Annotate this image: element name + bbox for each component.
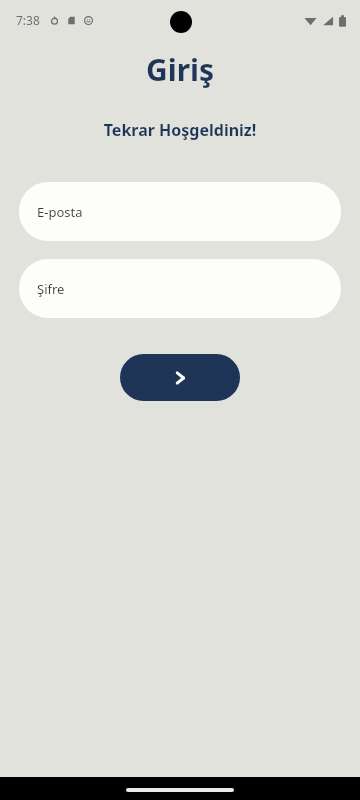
staticText: E-posta bbox=[37, 203, 83, 221]
button[interactable]: Giriş yap bbox=[120, 354, 240, 401]
button[interactable]: Şifre bbox=[19, 259, 341, 318]
staticText: Giriş bbox=[0, 49, 360, 90]
staticText: Tekrar Hoşgeldiniz! bbox=[0, 119, 360, 141]
staticText: 7:38 bbox=[16, 12, 40, 28]
button[interactable]: E-posta bbox=[19, 182, 341, 241]
staticText: Şifre bbox=[37, 280, 65, 298]
